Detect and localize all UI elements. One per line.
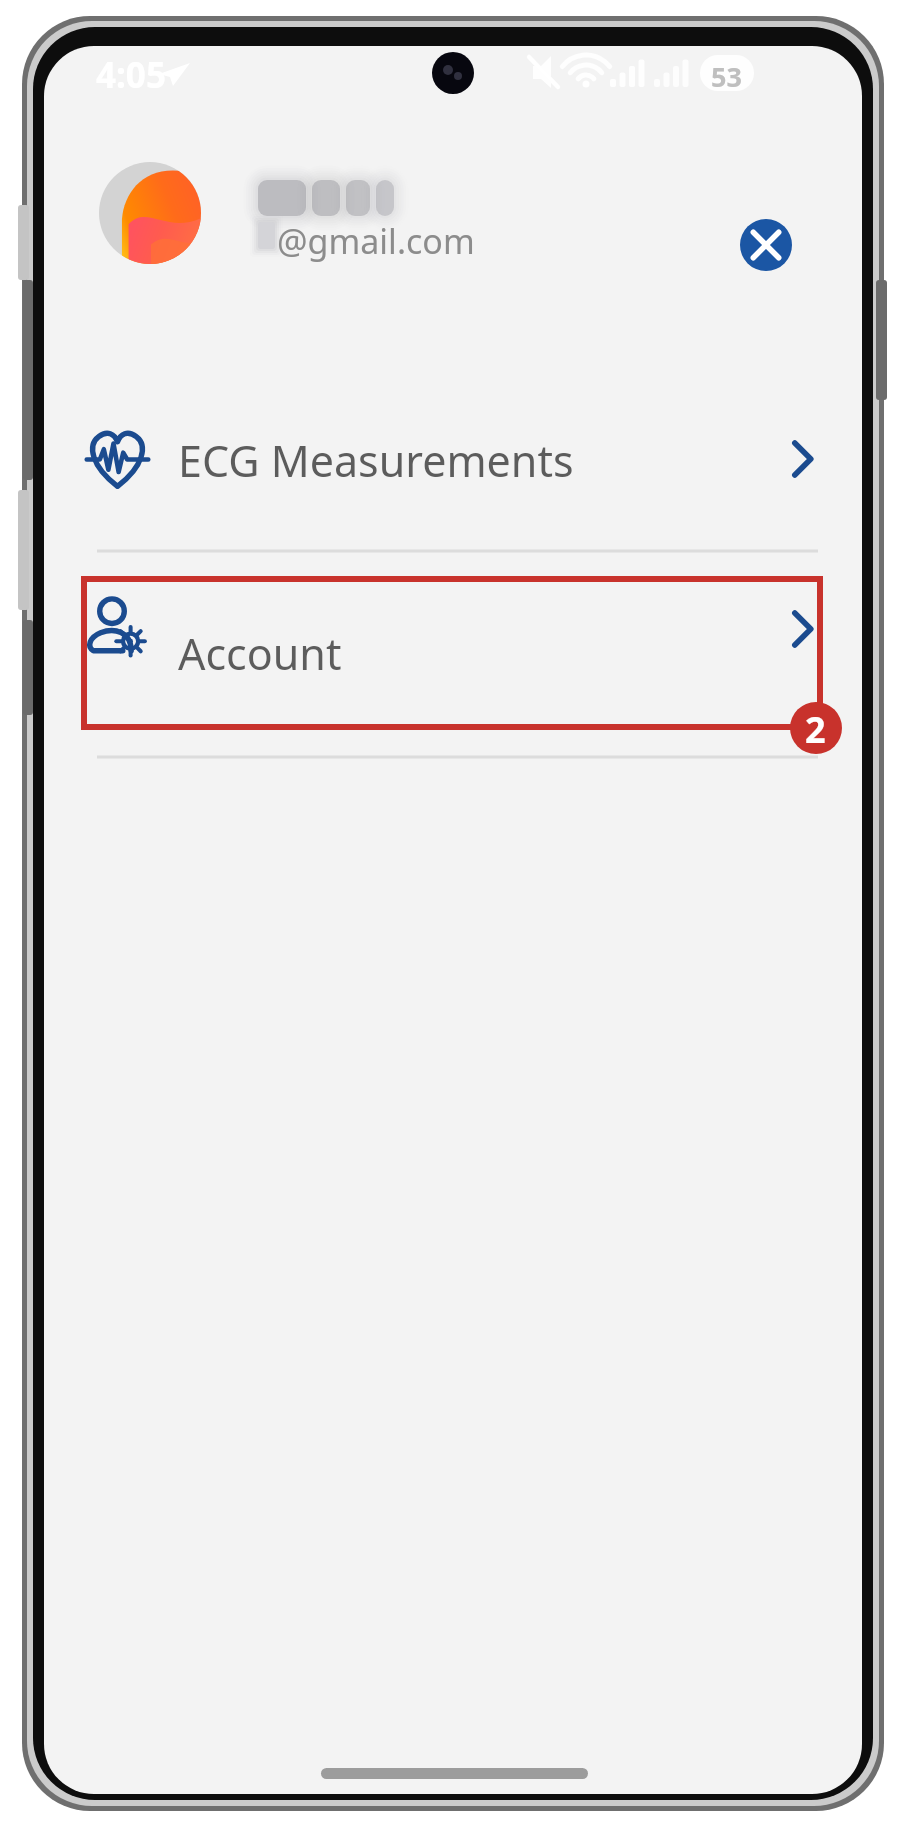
button[interactable]: ECG Measurements: [84, 403, 820, 517]
staticText: 53: [711, 58, 742, 95]
staticText: ECG Measurements: [178, 431, 574, 490]
staticText: 2: [805, 705, 826, 754]
staticText: 4:05: [96, 51, 166, 99]
staticText: Account: [178, 624, 342, 683]
button[interactable]: Account: [84, 579, 820, 727]
staticText: @gmail.com: [277, 218, 475, 264]
button[interactable]: Close: [740, 219, 792, 271]
